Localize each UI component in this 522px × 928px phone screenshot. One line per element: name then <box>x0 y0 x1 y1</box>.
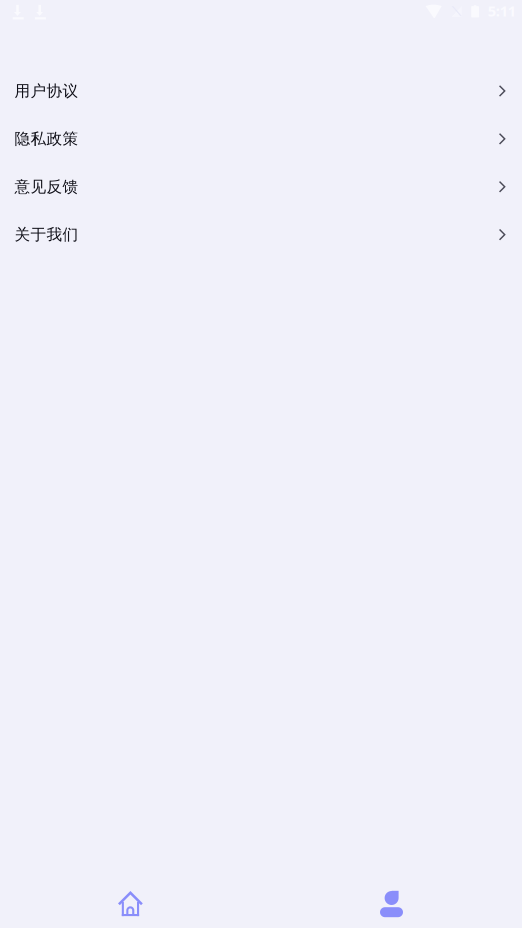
staticText: 关于我们 <box>15 225 79 244</box>
staticText: 隐私政策 <box>15 129 79 149</box>
button[interactable]: Profile <box>261 880 522 928</box>
button[interactable]: 用户协议 <box>0 67 522 115</box>
staticText: 5:11 <box>488 1 516 21</box>
button[interactable]: 隐私政策 <box>0 115 522 163</box>
staticText: 用户协议 <box>15 81 79 101</box>
button[interactable]: 意见反馈 <box>0 163 522 211</box>
button[interactable]: 关于我们 <box>0 211 522 259</box>
staticText: 意见反馈 <box>15 177 79 197</box>
button[interactable]: Home <box>0 880 261 928</box>
